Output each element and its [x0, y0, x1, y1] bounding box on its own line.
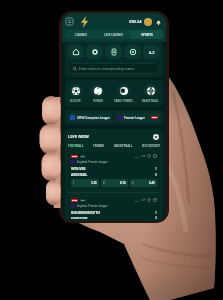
button[interactable]: Filter sports [152, 133, 160, 141]
staticText: 8.16 [120, 181, 126, 185]
staticText: 34' [81, 155, 85, 158]
button[interactable]: Home [68, 45, 84, 59]
staticText: UEFA Champions League [77, 116, 110, 120]
staticText: LIVE NOW [68, 134, 89, 140]
button[interactable]: SOCCER [69, 84, 82, 103]
staticText: LIVE CASINO [104, 33, 123, 37]
staticText: 1.25 [91, 181, 97, 185]
staticText: SOCCER [70, 99, 81, 103]
staticText: +28 [134, 155, 139, 158]
button[interactable]: 2 [132, 179, 155, 187]
staticText: €30.34 [129, 19, 142, 24]
button[interactable]: TABLE TENNIS [114, 84, 133, 103]
staticText: 5.45 [149, 181, 155, 185]
staticText: 1 [155, 211, 157, 215]
button[interactable]: LIVE CASINO [97, 30, 130, 39]
button[interactable]: Notifications [154, 18, 162, 26]
staticText: 4 [155, 216, 157, 219]
button[interactable]: Menu [66, 18, 73, 25]
staticText: LIVE [152, 116, 157, 119]
button[interactable]: LIVE [71, 198, 157, 219]
staticText: FOOTBALL [68, 144, 84, 148]
staticText: A-Z [149, 50, 155, 55]
button[interactable]: A-Z [143, 45, 160, 59]
staticText: Premier League [124, 116, 145, 120]
button[interactable]: LIVE [71, 154, 157, 187]
staticText: X [103, 181, 105, 185]
button[interactable]: BASKETBALL [114, 144, 133, 148]
staticText: SPORTS [141, 33, 153, 37]
button[interactable]: SPORTS [130, 30, 163, 39]
button[interactable]: Premier League [117, 113, 158, 122]
button[interactable]: Bet slip [105, 45, 122, 59]
staticText: BOURNEMOUTH [71, 210, 101, 215]
button[interactable]: TENNIS [93, 144, 105, 148]
staticText: 1 [73, 181, 75, 185]
staticText: CASINO [75, 33, 87, 37]
button[interactable]: X [103, 179, 126, 187]
staticText: 34' [81, 199, 85, 202]
staticText: TABLE TENNIS [114, 99, 133, 103]
button[interactable]: FOOTBALL [68, 144, 84, 148]
staticText: ICE HOCKEY [142, 144, 160, 148]
staticText: 0 [155, 173, 157, 177]
staticText: Enter team or championship name [79, 66, 135, 71]
staticText: WOLVES [71, 166, 86, 171]
staticText: 1 [155, 167, 157, 171]
staticText: England. Premier League [77, 204, 108, 208]
staticText: +28 [134, 199, 139, 202]
staticText: TENNIS [93, 144, 105, 148]
button[interactable]: Wallet [144, 18, 152, 26]
button[interactable]: UEFA Champions League [70, 113, 110, 122]
staticText: EVERTON [71, 216, 88, 219]
button[interactable]: 1 [73, 179, 97, 187]
staticText: LIVE [72, 199, 77, 202]
button[interactable]: Sports [124, 45, 141, 59]
staticText: LIVE [72, 155, 77, 158]
button[interactable]: BASKETBALL [142, 84, 159, 103]
button[interactable]: ICE HOCKEY [142, 144, 160, 148]
staticText: England. Premier League [77, 160, 108, 164]
button[interactable]: CASINO [65, 30, 97, 39]
staticText: TENNIS [93, 99, 103, 103]
button[interactable]: TENNIS [91, 84, 104, 103]
staticText: ARSENAL [71, 172, 88, 177]
button[interactable]: Live [86, 45, 103, 59]
staticText: 2 [132, 181, 134, 185]
staticText: BASKETBALL [114, 144, 133, 148]
staticText: BASKETBALL [142, 99, 159, 103]
button[interactable]: Enter team or championship name [68, 63, 160, 74]
